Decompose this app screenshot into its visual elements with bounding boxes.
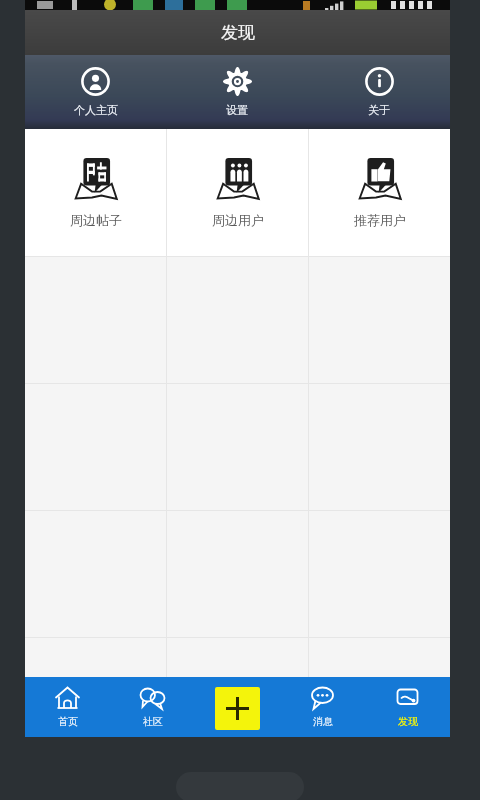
button[interactable]: New post	[195, 677, 280, 737]
button[interactable]: 周边用户	[167, 129, 308, 256]
button[interactable]: 个人主页	[25, 55, 166, 129]
staticText: 周边帖子	[70, 212, 122, 228]
staticText: 周边用户	[212, 212, 264, 228]
button[interactable]: 消息	[280, 677, 365, 737]
staticText: 推荐用户	[354, 212, 406, 228]
button[interactable]: 发现	[365, 677, 450, 737]
staticText: 关于	[368, 103, 390, 117]
button[interactable]: 推荐用户	[309, 129, 450, 256]
button[interactable]: 设置	[166, 55, 308, 129]
staticText: 发现	[398, 715, 418, 728]
staticText: 个人主页	[74, 103, 118, 117]
button[interactable]: 首页	[25, 677, 110, 737]
staticText: 发现	[221, 22, 255, 43]
button[interactable]: 社区	[110, 677, 195, 737]
staticText: 社区	[143, 715, 163, 728]
button[interactable]: 周边帖子	[25, 129, 166, 256]
button[interactable]: 关于	[308, 55, 450, 129]
button[interactable]: 发现	[25, 10, 450, 55]
staticText: 设置	[226, 103, 248, 117]
staticText: 消息	[313, 715, 333, 728]
staticText: 首页	[58, 715, 78, 728]
